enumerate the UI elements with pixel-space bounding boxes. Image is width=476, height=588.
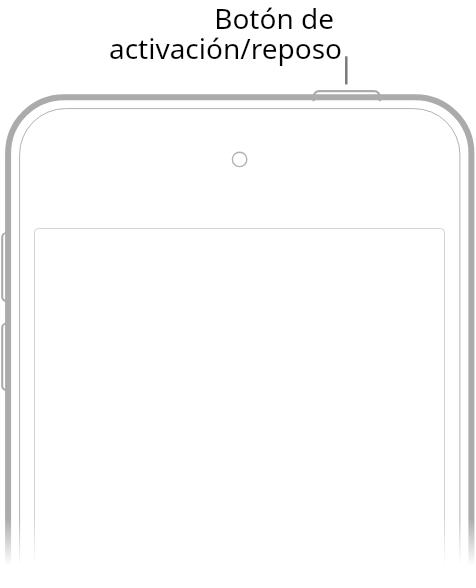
button[interactable]: Botón de activación/reposo [313,88,380,101]
staticText: Botón de [41,0,334,37]
button[interactable]: Bajar volumen [0,323,14,390]
staticText: activación/reposo [41,29,342,67]
button[interactable]: Subir volumen [0,233,14,301]
